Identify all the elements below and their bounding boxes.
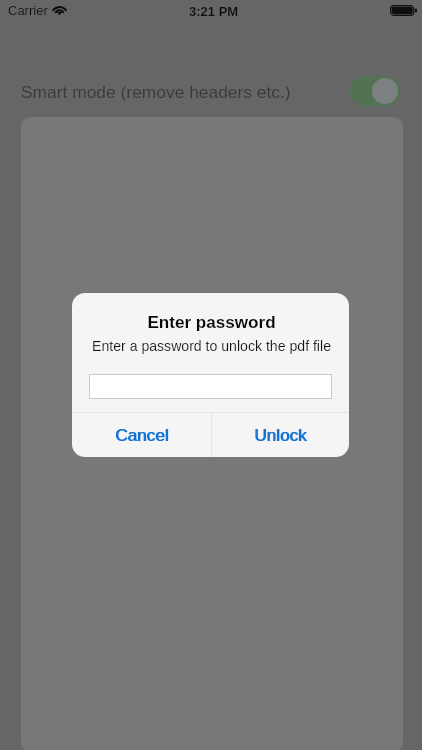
staticText: 3:21 PM: [189, 4, 239, 19]
button[interactable]: Smart mode (remove headers etc.): [0, 69, 422, 113]
staticText: Enter a password to unlock the pdf file: [73, 338, 349, 354]
staticText: Cancel: [115, 426, 169, 445]
staticText: Cancel: [116, 426, 170, 445]
button[interactable]: Cancel: [72, 413, 211, 457]
staticText: Unlock: [254, 426, 307, 445]
button[interactable]: Smart mode: [350, 76, 400, 106]
staticText: Carrier: [8, 3, 48, 18]
staticText: Unlock: [255, 426, 308, 445]
button[interactable]: Unlock: [212, 413, 349, 457]
staticText: Enter password: [73, 313, 349, 332]
staticText: Smart mode (remove headers etc.): [21, 82, 291, 101]
